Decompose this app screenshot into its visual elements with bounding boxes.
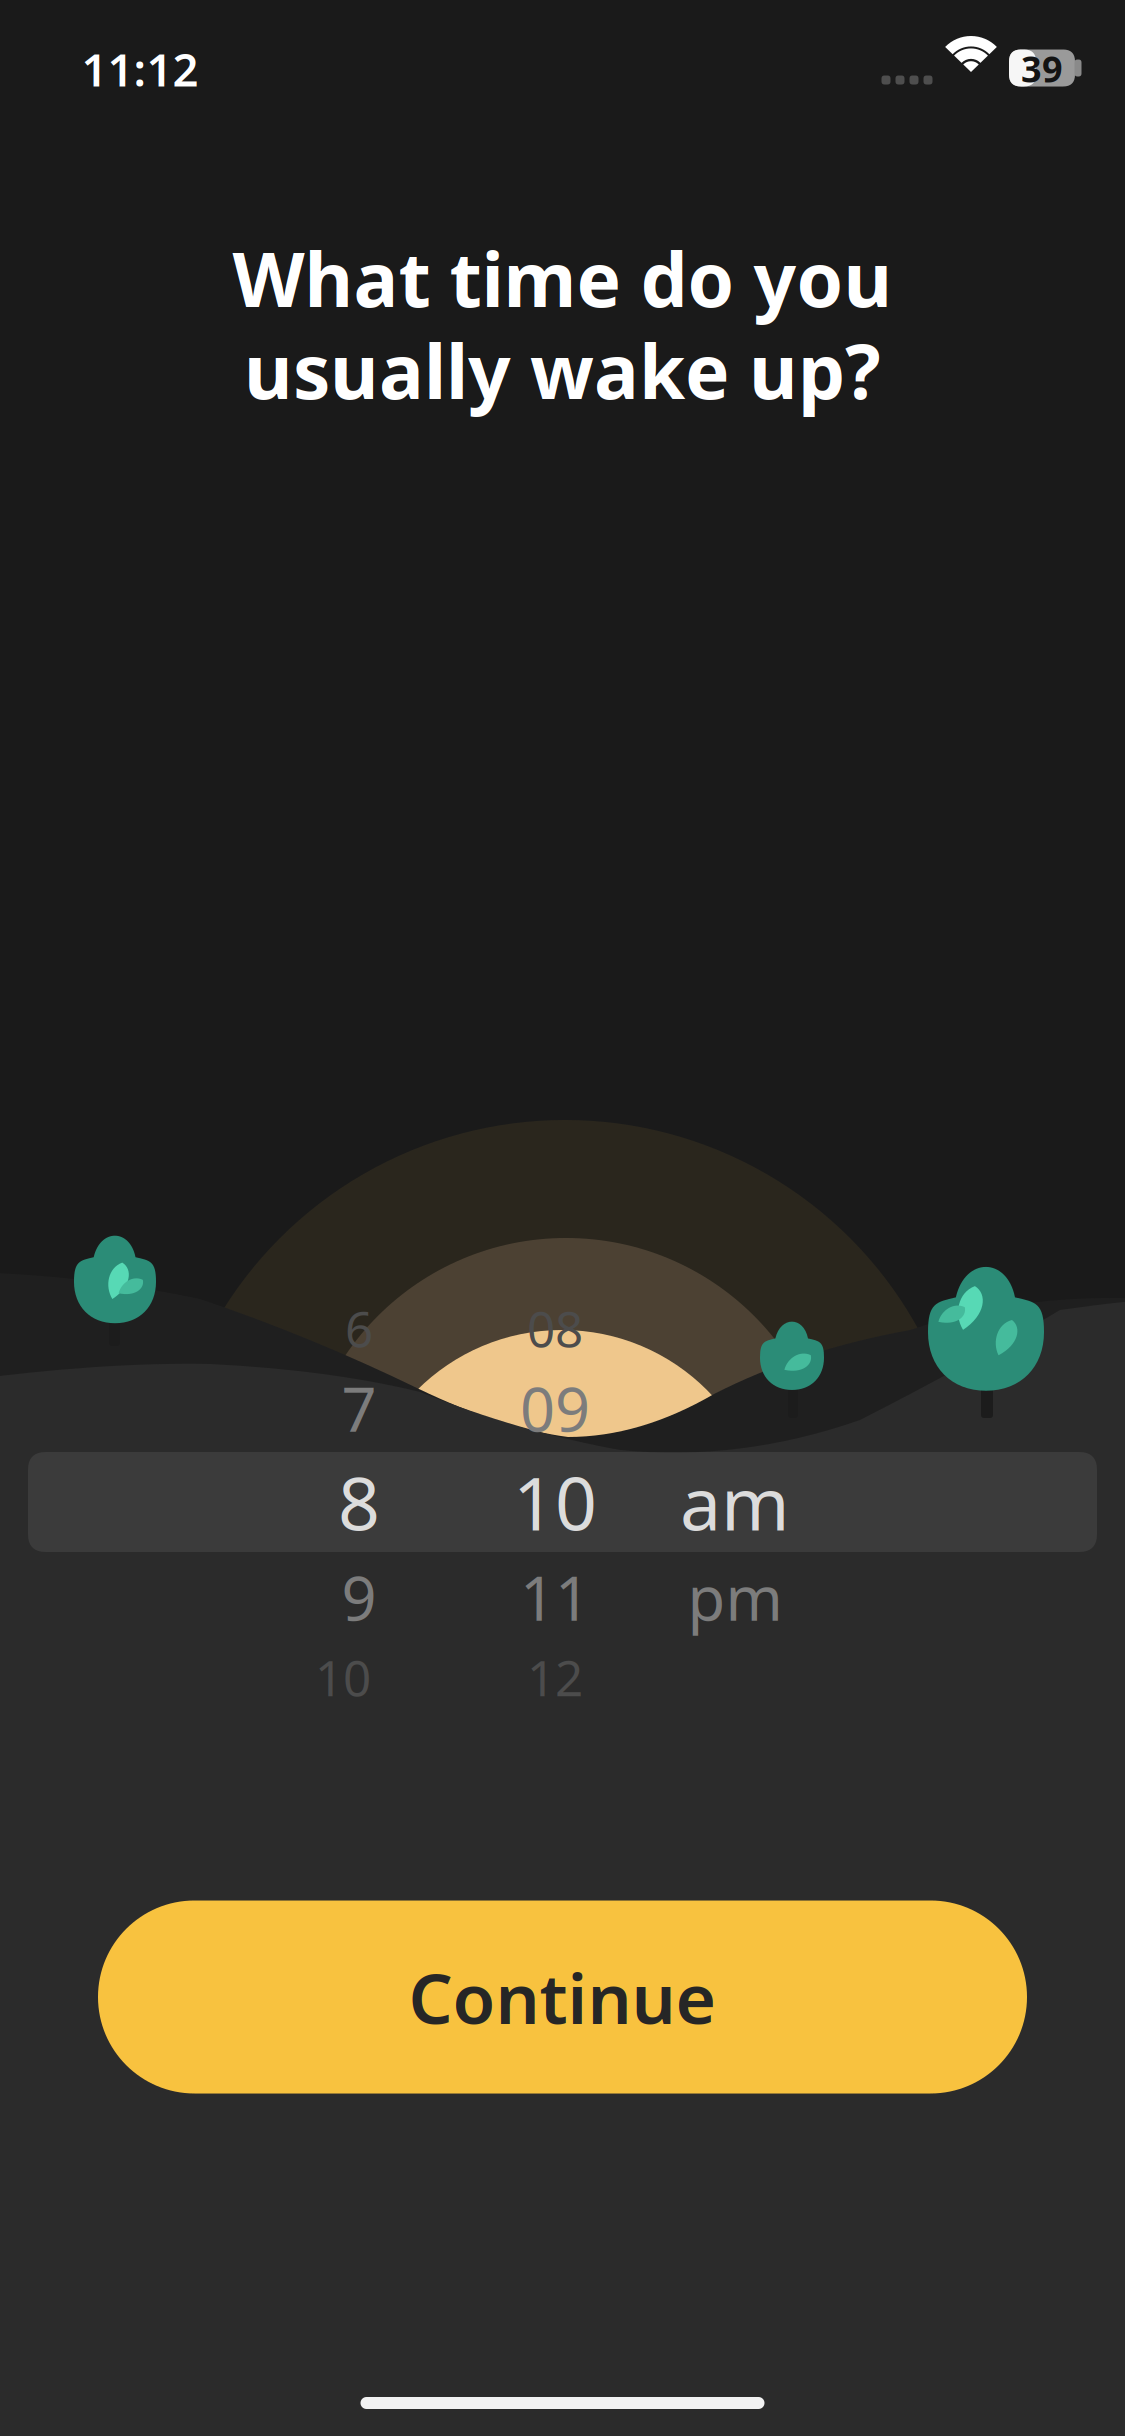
- staticText: 09: [520, 1367, 590, 1449]
- staticText: Continue: [408, 1951, 716, 2043]
- staticText: 8: [338, 1453, 380, 1551]
- staticText: 6: [345, 1295, 373, 1361]
- staticText: pm: [687, 1556, 782, 1638]
- staticText: What time do you: [232, 228, 892, 327]
- staticText: 10: [513, 1453, 597, 1551]
- staticText: am: [680, 1453, 790, 1551]
- staticText: 11: [520, 1556, 590, 1638]
- staticText: 11:12: [81, 39, 198, 99]
- staticText: usually wake up?: [244, 320, 881, 420]
- staticText: 08: [527, 1295, 583, 1361]
- button[interactable]: Continue: [98, 1900, 1027, 2093]
- staticText: 39: [1021, 45, 1063, 92]
- staticText: 7: [341, 1367, 376, 1449]
- staticText: 12: [527, 1644, 583, 1710]
- staticText: 10: [315, 1644, 371, 1710]
- staticText: 9: [341, 1556, 376, 1638]
